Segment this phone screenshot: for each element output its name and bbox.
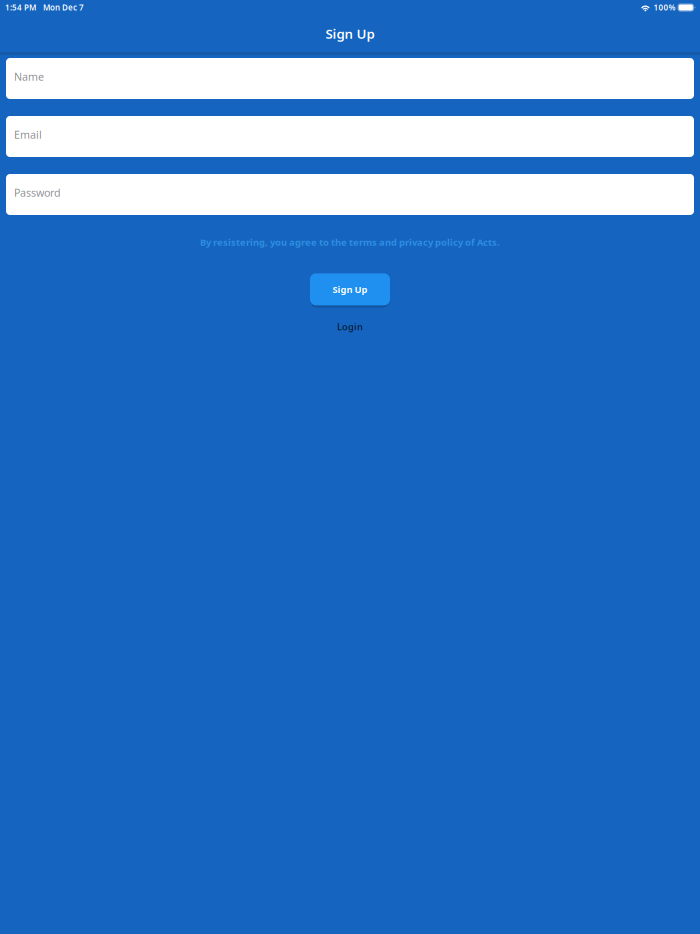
button[interactable]: Sign Up [310, 273, 390, 305]
button[interactable]: Name [6, 58, 694, 99]
staticText: By resistering, you agree to the terms a… [200, 236, 500, 248]
button[interactable]: Password [6, 174, 694, 215]
button[interactable]: Email [6, 116, 694, 157]
staticText: 100% [654, 2, 676, 13]
button[interactable]: Login [333, 316, 367, 337]
staticText: Name [14, 69, 44, 84]
staticText: Sign Up [325, 25, 374, 42]
staticText: Mon Dec 7 [43, 2, 84, 13]
staticText: Email [14, 127, 42, 142]
staticText: Login [337, 320, 363, 333]
staticText: Sign Up [332, 283, 367, 296]
staticText: 1:54 PM [5, 2, 36, 13]
staticText: Password [14, 185, 61, 200]
